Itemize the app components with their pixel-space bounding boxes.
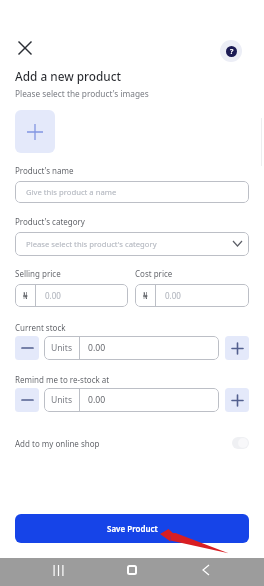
staticText: ₦ [23,290,28,301]
button[interactable]: Save Product [15,514,249,543]
button[interactable]: Recent apps [47,559,69,581]
staticText: Please select this product's category [26,239,157,249]
staticText: Save Product [107,523,158,534]
staticText: Product's name [15,165,74,176]
staticText: 0.00 [165,290,181,301]
button[interactable]: Units [44,388,219,412]
button[interactable]: Home [121,559,143,581]
staticText: 0.00 [88,342,106,354]
staticText: 0.00 [45,290,61,301]
staticText: Product's category [15,216,85,227]
button[interactable]: Close [14,37,36,59]
staticText: ? [230,47,234,57]
staticText: Units [51,342,73,354]
button[interactable]: ₦ [15,284,128,307]
staticText: Current stock [15,322,66,333]
staticText: ₦ [143,290,148,301]
staticText: Cost price [135,268,173,279]
button[interactable]: Add image [15,110,55,153]
button[interactable]: Please select this product's category [15,232,249,256]
staticText: Please select the product's images [15,88,149,99]
button[interactable]: Decrease [15,388,39,412]
staticText: Units [51,394,73,406]
button[interactable]: Increase [225,388,249,412]
staticText: Add to my online shop [15,438,100,449]
button[interactable]: Add to my online shop [15,435,249,451]
button[interactable]: Decrease [15,336,39,360]
button[interactable]: Give this product a name [15,181,249,203]
button[interactable]: Units [44,336,219,360]
staticText: Selling price [15,268,61,279]
staticText: Add a new product [15,68,122,84]
button[interactable]: ₦ [135,284,249,307]
staticText: Remind me to re-stock at [15,374,110,385]
staticText: Give this product a name [26,187,117,197]
button[interactable]: Back [195,559,217,581]
button[interactable]: Increase [225,336,249,360]
staticText: 0.00 [88,394,106,406]
button[interactable]: Help [220,40,242,62]
